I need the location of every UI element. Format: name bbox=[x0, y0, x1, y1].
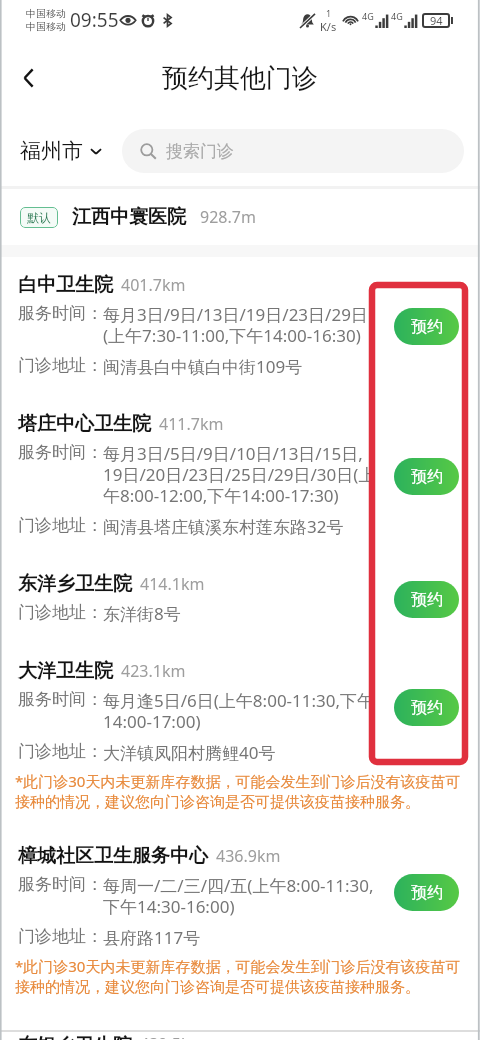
staticText: 预约 bbox=[411, 698, 443, 718]
staticText: 服务时间： bbox=[18, 874, 103, 895]
staticText: 预约 bbox=[411, 467, 443, 487]
staticText: 大洋镇凤阳村腾鲤40号 bbox=[103, 741, 276, 764]
staticText: 东洋乡卫生院 bbox=[18, 572, 132, 596]
button[interactable]: 塔庄中心卫生院 bbox=[0, 396, 480, 556]
staticText: 服务时间： bbox=[18, 689, 103, 710]
staticText: 414.1km bbox=[140, 573, 205, 595]
staticText: 09:55 bbox=[70, 7, 119, 33]
staticText: 服务时间： bbox=[18, 442, 103, 463]
staticText: 436.9km bbox=[216, 845, 281, 867]
staticText: 4G bbox=[391, 10, 403, 22]
staticText: 门诊地址： bbox=[18, 741, 103, 762]
staticText: 搜索门诊 bbox=[166, 141, 234, 162]
staticText: 4G bbox=[362, 10, 374, 22]
staticText: 预约其他门诊 bbox=[162, 62, 318, 95]
staticText: 门诊地址： bbox=[18, 602, 103, 623]
staticText: 默认 bbox=[27, 210, 51, 225]
staticText: 每月3日/5日/9日/10日/13日/15日, 19日/20日/23日/25日/… bbox=[103, 442, 376, 507]
staticText: 预约 bbox=[411, 317, 443, 337]
staticText: 411.7km bbox=[159, 413, 224, 435]
staticText: 中国移动 bbox=[26, 20, 66, 33]
button[interactable]: 东银乡卫生院 bbox=[0, 1032, 480, 1040]
staticText: 门诊地址： bbox=[18, 355, 103, 376]
staticText: 401.7km bbox=[121, 274, 186, 296]
staticText: 439.5km bbox=[140, 1033, 205, 1039]
staticText: 县府路117号 bbox=[103, 926, 201, 949]
staticText: 东洋街8号 bbox=[103, 602, 181, 625]
staticText: *此门诊30天内未更新库存数据，可能会发生到门诊后没有该疫苗可 接种的情况，建议… bbox=[15, 771, 461, 811]
staticText: 服务时间： bbox=[18, 303, 103, 324]
button[interactable]: Back bbox=[6, 55, 52, 101]
staticText: 中国移动 bbox=[26, 7, 66, 20]
staticText: 福州市 bbox=[20, 138, 83, 164]
staticText: 白中卫生院 bbox=[18, 273, 113, 297]
staticText: 每月逢5日/6日(上午8:00-11:30,下午 14:00-17:00) bbox=[103, 689, 375, 733]
button[interactable]: 预约 bbox=[394, 581, 459, 618]
button[interactable]: 默认 bbox=[0, 189, 480, 245]
button[interactable]: 福州市 bbox=[20, 130, 102, 172]
button[interactable]: 预约 bbox=[394, 689, 459, 726]
button[interactable]: 预约 bbox=[394, 308, 459, 345]
staticText: 94 bbox=[430, 13, 443, 28]
staticText: 每周一/二/三/四/五(上午8:00-11:30, 下午14:30-16:00) bbox=[103, 874, 374, 918]
staticText: 预约 bbox=[411, 590, 443, 610]
staticText: 1 bbox=[326, 7, 332, 19]
button[interactable]: 白中卫生院 bbox=[0, 257, 480, 396]
staticText: 每月3日/9日/13日/19日/23日/29日 (上午7:30-11:00,下午… bbox=[103, 303, 368, 347]
button[interactable]: 东洋乡卫生院 bbox=[0, 556, 480, 643]
staticText: 928.7m bbox=[200, 206, 256, 228]
staticText: 预约 bbox=[411, 883, 443, 903]
button[interactable]: 搜索门诊 bbox=[122, 129, 464, 173]
staticText: 门诊地址： bbox=[18, 926, 103, 947]
staticText: 江西中寰医院 bbox=[72, 205, 186, 229]
staticText: 闽清县白中镇白中街109号 bbox=[103, 355, 303, 378]
button[interactable]: 预约 bbox=[394, 874, 459, 911]
staticText: 大洋卫生院 bbox=[18, 659, 113, 683]
button[interactable]: 预约 bbox=[394, 458, 459, 495]
staticText: 门诊地址： bbox=[18, 515, 103, 536]
staticText: 东银乡卫生院 bbox=[18, 1034, 132, 1040]
staticText: *此门诊30天内未更新库存数据，可能会发生到门诊后没有该疫苗可 接种的情况，建议… bbox=[15, 956, 461, 996]
button[interactable]: 樟城社区卫生服务中心 bbox=[0, 828, 480, 1013]
staticText: 闽清县塔庄镇溪东村莲东路32号 bbox=[103, 515, 344, 538]
staticText: 塔庄中心卫生院 bbox=[18, 412, 151, 436]
button[interactable]: 大洋卫生院 bbox=[0, 643, 480, 828]
staticText: 樟城社区卫生服务中心 bbox=[18, 844, 208, 868]
staticText: 423.1km bbox=[121, 660, 186, 682]
staticText: K/s bbox=[320, 19, 337, 34]
